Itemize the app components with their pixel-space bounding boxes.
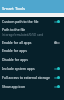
button[interactable]: Show app icon — [0, 82, 64, 91]
staticText: Smart Tools — [2, 6, 26, 12]
staticText: Disable for apps — [2, 57, 28, 62]
button[interactable]: Enable for apps — [0, 46, 64, 55]
button[interactable]: Include system apps — [0, 64, 64, 73]
staticText: Full access to external storage — [2, 75, 50, 80]
button[interactable]: Custom path to the file — [0, 17, 64, 26]
button[interactable]: Disable for apps — [0, 55, 64, 64]
staticText: Custom path to the file — [2, 19, 39, 24]
staticText: Show app icon — [2, 84, 26, 89]
staticText: /storage/emulated/0/SD card — [2, 33, 44, 37]
staticText: Include system apps — [2, 66, 35, 71]
staticText: Enable for apps — [2, 48, 27, 53]
button[interactable]: Enable for all apps — [0, 38, 64, 47]
staticText: Path to the file — [2, 27, 26, 32]
staticText: Enable for all apps — [2, 40, 32, 45]
button[interactable]: Full access to external storage — [0, 73, 64, 82]
button[interactable]: Path to the file — [0, 26, 64, 38]
